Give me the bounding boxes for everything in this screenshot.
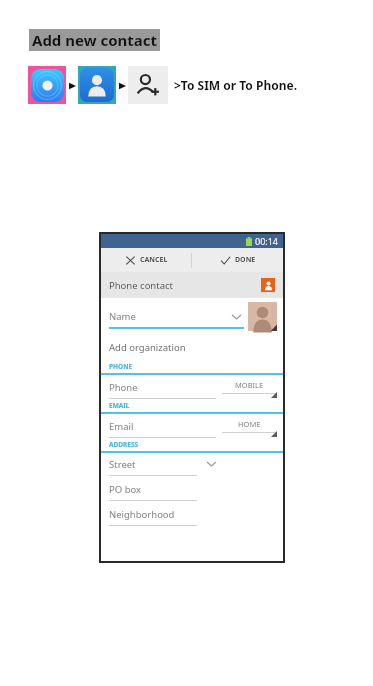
staticText: Add new contact [32,30,157,50]
button[interactable]: Phone contact [101,272,283,298]
staticText: DONE [235,255,256,265]
staticText: EMAIL [109,401,130,410]
button[interactable]: MOBILE [222,380,277,399]
staticText: ADDRESS [109,440,139,449]
button[interactable]: Contact photo [248,302,277,331]
staticText: Neighborhood [109,508,175,521]
button[interactable]: Neighborhood [109,508,197,521]
button[interactable]: Add organization [101,340,283,359]
staticText: CANCEL [140,255,168,265]
staticText: Name [109,310,136,323]
staticText: PHONE [109,362,133,371]
button[interactable]: DONE [192,248,283,272]
staticText: Phone contact [109,279,173,292]
button[interactable]: Name [109,310,230,323]
staticText: HOME [238,419,261,429]
button[interactable]: Street [109,458,197,471]
staticText: Add organization [109,341,186,354]
staticText: PO box [109,483,142,496]
button[interactable]: PO box [109,483,197,496]
button[interactable]: HOME [222,419,277,438]
staticText: MOBILE [235,380,264,390]
button[interactable]: Email [109,420,216,433]
staticText: Street [109,458,136,471]
button[interactable]: Expand address [205,458,217,470]
button[interactable]: Phone [109,381,216,394]
staticText: 00:14 [255,235,279,247]
button[interactable]: Add new contact [128,66,168,104]
staticText: Phone [109,381,138,394]
staticText: Email [109,420,134,433]
button[interactable]: Contacts app [28,66,66,104]
staticText: >To SIM or To Phone. [174,77,298,93]
button[interactable]: Expand name [230,311,242,323]
button[interactable]: People [78,66,116,104]
button[interactable]: CANCEL [101,248,191,272]
